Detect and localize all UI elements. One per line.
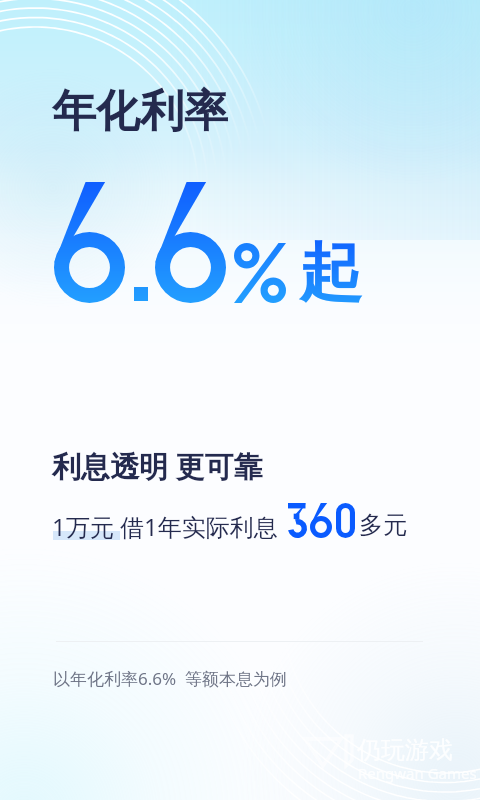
staticText: 起 [299, 233, 362, 312]
staticText: 多元 [359, 510, 407, 540]
staticText: Rengwan Games [358, 763, 477, 783]
staticText: 仍玩游戏 [357, 735, 453, 765]
staticText: 1万元 借1年实际利息 [52, 510, 278, 543]
staticText: 利息透明 更可靠 [52, 446, 263, 486]
staticText: 年化利率 [52, 84, 228, 139]
staticText: 以年化利率6.6% 等额本息为例 [53, 667, 287, 690]
